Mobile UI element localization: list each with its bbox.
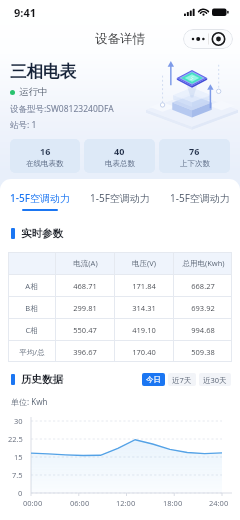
staticText: 15 xyxy=(14,452,23,462)
staticText: 668.27 xyxy=(191,281,215,291)
staticText: 550.47 xyxy=(73,325,97,335)
button[interactable]: 近30天 xyxy=(199,373,231,386)
staticText: 近7天 xyxy=(172,375,192,385)
staticText: 314.31 xyxy=(132,303,156,313)
button[interactable]: 1-5F空调动力 xyxy=(160,179,240,211)
button[interactable]: 今日 xyxy=(142,373,165,386)
staticText: 总用电(Kwh) xyxy=(182,258,225,268)
staticText: 7.5 xyxy=(12,470,23,480)
staticText: 00:00 xyxy=(23,498,43,508)
staticText: 历史数据 xyxy=(21,373,63,386)
staticText: 1-5F空调动力 xyxy=(170,191,230,205)
staticText: 468.71 xyxy=(73,281,97,291)
staticText: 设备详情 xyxy=(95,31,145,47)
staticText: 40 xyxy=(114,145,125,157)
staticText: 509.38 xyxy=(191,347,215,357)
staticText: 设备型号:SW08123240DFA xyxy=(10,103,114,115)
button[interactable]: 1-5F空调动力 xyxy=(0,179,80,211)
staticText: 实时参数 xyxy=(21,227,63,240)
staticText: B相 xyxy=(25,303,38,313)
staticText: 1-5F空调动力 xyxy=(10,191,70,205)
staticText: 170.40 xyxy=(132,347,156,357)
staticText: 上下次数 xyxy=(180,159,210,168)
staticText: 运行中 xyxy=(19,86,48,98)
staticText: 0 xyxy=(18,488,23,498)
staticText: 近30天 xyxy=(203,375,227,385)
button[interactable]: 近7天 xyxy=(168,373,196,386)
staticText: 18:00 xyxy=(163,498,183,508)
staticText: 电压(V) xyxy=(132,258,156,268)
staticText: 12:00 xyxy=(116,498,136,508)
staticText: 396.67 xyxy=(73,347,97,357)
button[interactable]: 40 xyxy=(84,139,155,173)
button[interactable]: More options and close xyxy=(183,29,233,49)
staticText: 994.68 xyxy=(191,325,215,335)
staticText: 今日 xyxy=(146,375,161,384)
staticText: 单位: Kwh xyxy=(11,396,48,407)
staticText: 在线电表数 xyxy=(26,159,64,168)
staticText: 299.81 xyxy=(73,303,97,313)
button[interactable]: 1-5F空调动力 xyxy=(80,179,160,211)
staticText: 76 xyxy=(189,145,200,157)
staticText: 1-5F空调动力 xyxy=(90,191,150,205)
staticText: 电表总数 xyxy=(105,159,135,168)
staticText: A相 xyxy=(25,281,38,291)
button[interactable]: 76 xyxy=(159,139,230,173)
staticText: 171.84 xyxy=(132,281,156,291)
staticText: 06:00 xyxy=(70,498,90,508)
staticText: 平均/总 xyxy=(19,347,45,357)
button[interactable]: 16 xyxy=(10,139,80,173)
staticText: 22.5 xyxy=(8,434,23,444)
staticText: 24:00 xyxy=(209,498,229,508)
staticText: 419.10 xyxy=(132,325,156,335)
staticText: 16 xyxy=(40,145,51,157)
staticText: 电流(A) xyxy=(73,258,98,268)
staticText: 9:41 xyxy=(14,5,36,20)
staticText: 693.92 xyxy=(191,303,215,313)
staticText: C相 xyxy=(25,325,38,335)
staticText: 三相电表 xyxy=(10,61,76,82)
staticText: 站号: 1 xyxy=(10,119,37,131)
staticText: 30 xyxy=(14,416,23,426)
